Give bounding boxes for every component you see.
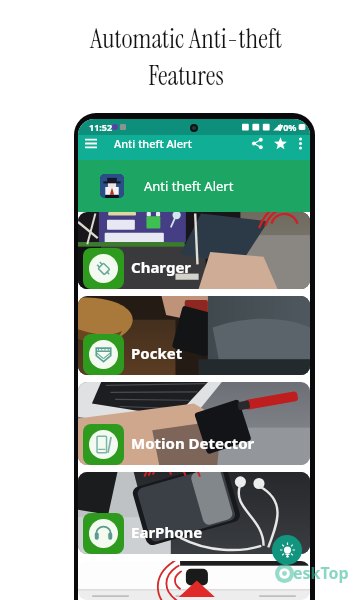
button[interactable]: EarPhone xyxy=(78,472,310,554)
button[interactable]: Rate app xyxy=(268,135,292,152)
staticText: Automatic Anti-theft xyxy=(90,21,282,56)
button[interactable]: Motion Detector xyxy=(78,382,310,465)
staticText: 11:52 xyxy=(89,121,113,133)
staticText: Charger xyxy=(131,257,192,277)
button[interactable]: Open navigation menu xyxy=(81,135,101,152)
staticText: Anti theft Alert xyxy=(114,136,192,151)
staticText: EarPhone xyxy=(131,522,203,542)
staticText: 70% xyxy=(278,121,297,133)
staticText: Anti theft Alert xyxy=(144,177,234,195)
button[interactable]: Charger xyxy=(78,212,310,289)
button[interactable]: Share xyxy=(246,135,268,152)
staticText: Features xyxy=(148,58,224,93)
staticText: Motion Detector xyxy=(131,433,255,453)
button[interactable]: More options xyxy=(292,135,308,152)
button[interactable]: Pocket xyxy=(78,296,310,375)
button[interactable]: Flash light xyxy=(272,535,302,565)
staticText: Pocket xyxy=(131,343,183,363)
staticText: eskTop xyxy=(293,562,349,584)
